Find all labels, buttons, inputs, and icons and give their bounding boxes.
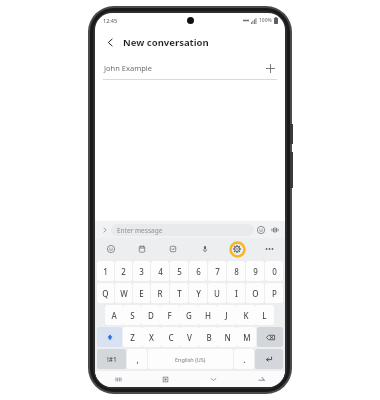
staticText: !#1 [107,355,117,364]
button[interactable]: Home [142,371,189,387]
staticText: 4 [158,266,163,277]
button[interactable]: R [151,283,169,303]
staticText: O [252,288,259,299]
button[interactable]: P [265,283,283,303]
staticText: Z [130,332,135,343]
button[interactable]: 3 [133,261,150,281]
button[interactable]: Voice [189,238,221,260]
button[interactable]: G [179,305,198,325]
button[interactable]: H [198,305,217,325]
button[interactable]: , [127,349,147,369]
button[interactable]: Enter [255,349,283,369]
button[interactable]: L [255,305,274,325]
button[interactable]: U [208,283,226,303]
button[interactable]: F [160,305,179,325]
button[interactable]: Settings [221,238,253,260]
staticText: J [225,310,228,321]
staticText: 9 [253,266,258,277]
button[interactable]: English (US) [148,349,233,369]
staticText: John Example [104,63,262,73]
button[interactable]: X [142,327,161,347]
button[interactable]: 4 [151,261,169,281]
staticText: S [130,310,135,321]
staticText: H [205,310,211,321]
button[interactable]: More [253,238,285,260]
button[interactable]: I [227,283,245,303]
staticText: 6 [196,266,201,277]
button[interactable]: Voice input [268,223,282,237]
staticText: D [148,310,154,321]
button[interactable]: B [199,327,218,347]
staticText: W [120,288,128,299]
staticText: L [262,310,267,321]
staticText: 12:45 [103,17,118,24]
staticText: T [177,288,182,299]
button[interactable]: 9 [246,261,264,281]
button[interactable]: Z [123,327,142,347]
button[interactable]: 1 [97,261,114,281]
button[interactable]: 2 [115,261,132,281]
staticText: N [224,332,231,343]
staticText: C [168,332,174,343]
button[interactable]: A [105,305,123,325]
button[interactable]: C [161,327,180,347]
button[interactable]: 7 [208,261,226,281]
button[interactable]: T [170,283,188,303]
staticText: 3 [139,266,144,277]
staticText: Enter message [117,226,163,235]
staticText: P [272,288,277,299]
button[interactable]: Emoji [95,238,126,260]
button[interactable]: Add recipient [262,60,278,76]
button[interactable]: E [133,283,150,303]
button[interactable]: . [234,349,254,369]
staticText: New conversation [123,36,209,49]
staticText: F [167,310,172,321]
button[interactable]: Back [101,33,119,51]
button[interactable]: Back [95,27,285,57]
staticText: X [149,332,154,343]
button[interactable]: D [141,305,160,325]
button[interactable]: 5 [170,261,188,281]
button[interactable]: S [123,305,141,325]
button[interactable]: 0 [265,261,283,281]
staticText: A [111,310,117,321]
staticText: Y [196,288,201,299]
button[interactable]: 8 [227,261,245,281]
button[interactable]: Recents [95,371,142,387]
button[interactable]: V [180,327,199,347]
button[interactable]: N [218,327,237,347]
button[interactable]: Q [97,283,114,303]
button[interactable]: M [237,327,256,347]
button[interactable]: Backspace [257,327,283,347]
button[interactable]: K [236,305,255,325]
button[interactable]: Shift [97,327,122,347]
button[interactable]: J [217,305,236,325]
staticText: English (US) [175,356,206,363]
button[interactable]: Clipboard [126,238,157,260]
button[interactable]: Stickers [157,238,189,260]
staticText: 100% [259,17,272,24]
staticText: R [157,288,163,299]
staticText: U [214,288,220,299]
button[interactable]: Enter message [111,224,254,236]
button[interactable]: 6 [189,261,207,281]
staticText: I [235,288,238,299]
staticText: Q [102,288,109,299]
staticText: 2 [121,266,126,277]
staticText: , [136,354,139,365]
staticText: 0 [272,266,277,277]
staticText: . [243,354,246,365]
staticText: 1 [103,266,108,277]
button[interactable]: Symbols [97,349,126,369]
button[interactable]: O [246,283,264,303]
button[interactable]: Expand [98,223,111,236]
staticText: G [186,310,192,321]
staticText: E [139,288,144,299]
button[interactable]: Back [237,371,285,387]
button[interactable]: Emoji [254,223,268,237]
staticText: 5 [177,266,182,277]
staticText: B [206,332,212,343]
button[interactable]: Y [189,283,207,303]
button[interactable]: W [115,283,132,303]
button[interactable]: Hide keyboard [189,371,237,387]
